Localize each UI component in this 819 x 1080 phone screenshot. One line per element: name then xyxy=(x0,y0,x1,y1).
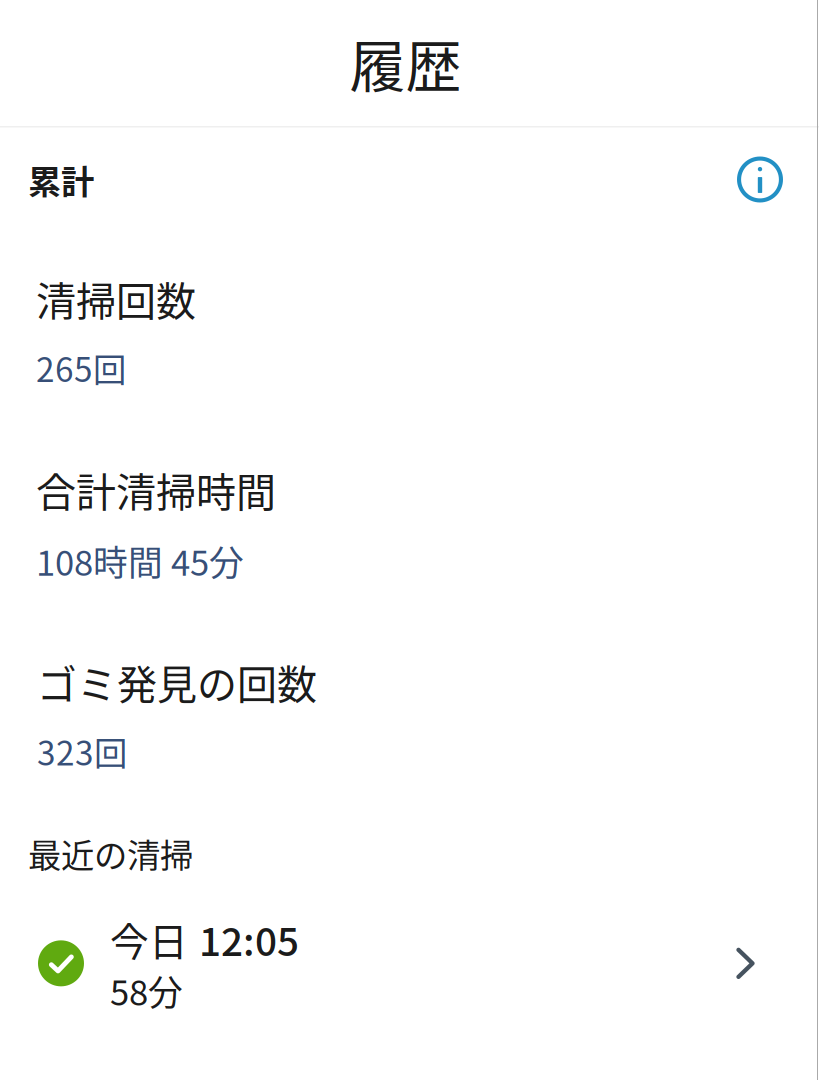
button[interactable]: 累計について xyxy=(725,144,795,214)
staticText: ゴミ発見の回数 xyxy=(37,653,317,711)
staticText: 265回 xyxy=(36,343,126,392)
staticText: 累計 xyxy=(28,155,94,204)
staticText: 108時間 45分 xyxy=(36,536,244,586)
staticText: 今日 xyxy=(110,911,188,967)
staticText: 323回 xyxy=(37,727,127,775)
staticText: 履歴 xyxy=(349,22,461,103)
staticText: 合計清掃時間 xyxy=(36,461,276,519)
staticText: 最近の清掃 xyxy=(28,829,193,877)
staticText: 12:05 xyxy=(199,911,299,967)
staticText: 58分 xyxy=(110,965,183,1015)
staticText: 清掃回数 xyxy=(36,269,196,327)
button[interactable]: 今日 xyxy=(0,911,819,1015)
